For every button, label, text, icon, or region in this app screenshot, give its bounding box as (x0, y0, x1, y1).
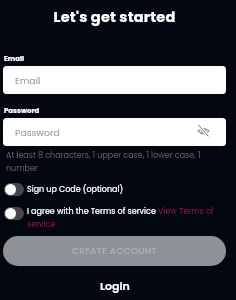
staticText: CREATE ACCOUNT (72, 245, 157, 258)
button[interactable]: Password (3, 118, 226, 146)
button[interactable]: Toggle (3, 183, 226, 196)
staticText: Login (100, 278, 130, 293)
button[interactable]: Login (3, 278, 226, 293)
staticText: Password (4, 106, 40, 116)
button[interactable]: Toggle (3, 206, 226, 230)
staticText: I agree with the Terms of service View T… (27, 206, 226, 230)
staticText: Password (15, 126, 60, 139)
staticText: Sign up Code (optional) (27, 184, 124, 195)
button[interactable]: Email (3, 66, 226, 94)
staticText: Email (4, 54, 25, 64)
button[interactable]: Toggle (4, 207, 24, 220)
staticText: Email (15, 74, 41, 87)
staticText: Let's get started (3, 7, 226, 27)
button[interactable]: Show password (195, 122, 211, 138)
staticText: At least 8 characters, 1 upper case, 1 l… (6, 150, 226, 174)
button[interactable]: Toggle (4, 183, 24, 196)
button[interactable]: CREATE ACCOUNT (3, 236, 226, 266)
